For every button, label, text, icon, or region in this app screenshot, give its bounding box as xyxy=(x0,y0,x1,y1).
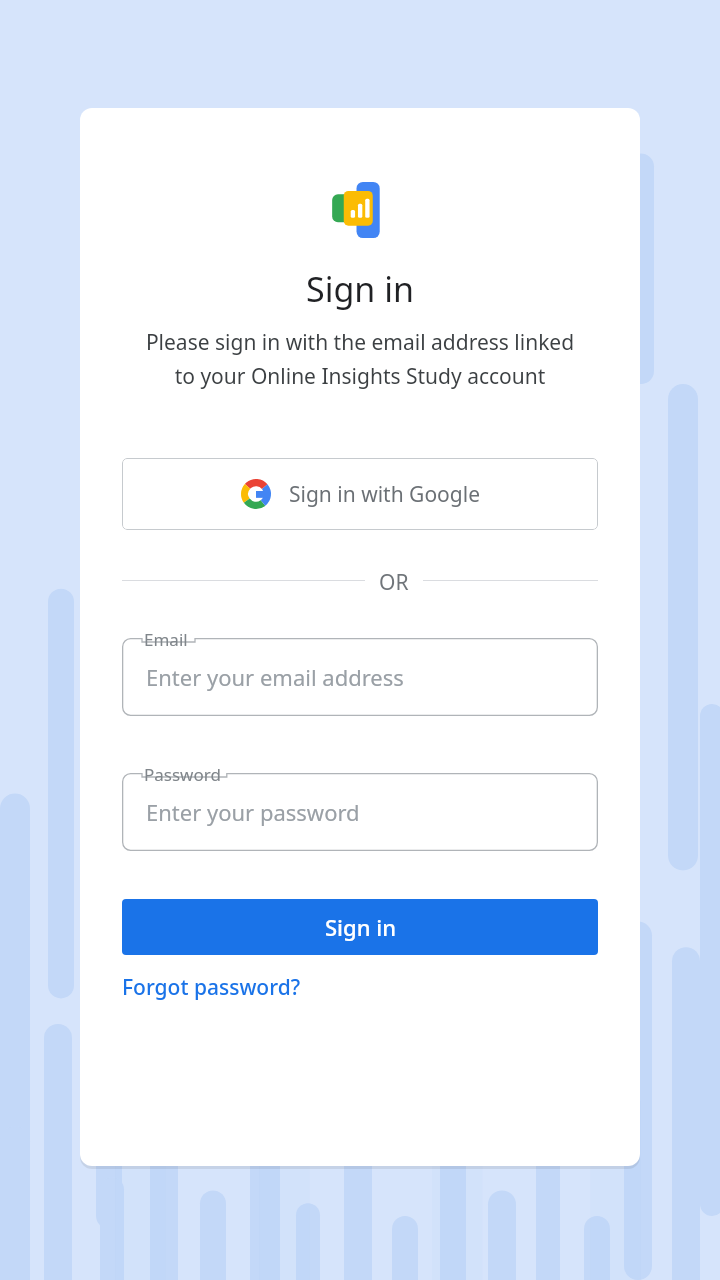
staticText: Enter your password xyxy=(146,797,360,827)
button[interactable]: Password xyxy=(122,763,598,851)
staticText: Enter your email address xyxy=(146,662,404,692)
staticText: Sign in with Google xyxy=(289,480,480,509)
other: Google xyxy=(241,479,271,509)
staticText: Email xyxy=(144,628,188,651)
staticText: OR xyxy=(379,568,409,592)
staticText: Forgot password? xyxy=(122,973,301,1002)
other: App logo xyxy=(331,182,389,238)
button[interactable]: Forgot password? xyxy=(122,969,301,1006)
staticText: Sign in xyxy=(325,912,396,942)
button[interactable]: Sign in xyxy=(122,899,598,955)
button[interactable]: Google xyxy=(122,458,598,530)
staticText: Sign in xyxy=(306,266,414,312)
staticText: Password xyxy=(144,763,221,786)
staticText: Please sign in with the email address li… xyxy=(80,328,640,390)
button[interactable]: Email xyxy=(122,628,598,716)
